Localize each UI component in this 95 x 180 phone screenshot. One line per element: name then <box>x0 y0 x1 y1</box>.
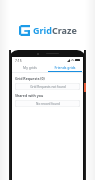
staticText: Grid Requests not found <box>30 85 66 89</box>
staticText: Grid <box>33 24 52 36</box>
button[interactable]: No record found <box>15 100 80 107</box>
staticText: Friends grids <box>54 65 76 70</box>
staticText: Grid Requests (0) <box>15 76 45 81</box>
button[interactable]: Grid Requests not found <box>15 83 80 90</box>
button[interactable]: Friends grids <box>47 63 83 72</box>
staticText: 7:15 <box>15 58 22 62</box>
staticText: Shared with you <box>15 93 44 98</box>
button[interactable]: My grids <box>12 63 47 72</box>
staticText: Craze <box>52 24 77 36</box>
button[interactable]: GridCraze logo <box>0 24 95 36</box>
staticText: No record found <box>36 102 60 106</box>
staticText: My grids <box>23 65 37 70</box>
other: GridCraze logo <box>19 25 30 36</box>
